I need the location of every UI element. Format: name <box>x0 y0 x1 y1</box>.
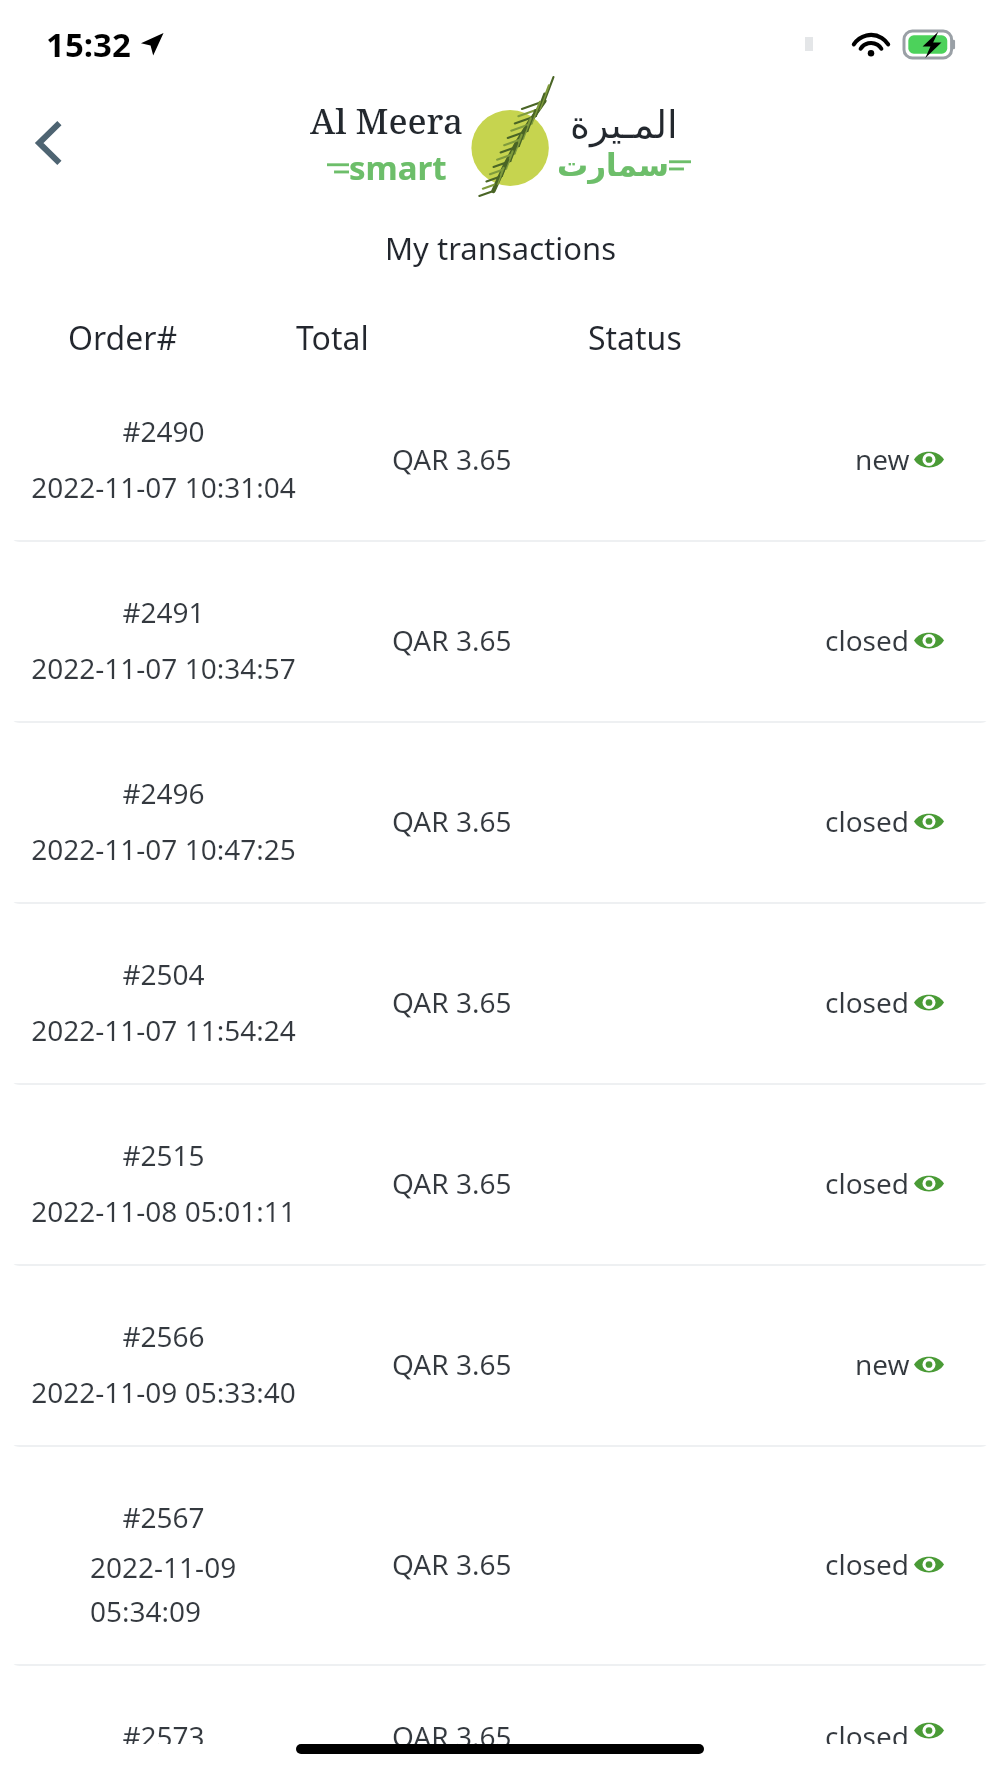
button[interactable]: #2573 <box>8 1683 992 1778</box>
staticText: سمارت <box>557 147 669 183</box>
staticText: 2022-11-07 10:47:25 <box>31 830 296 868</box>
staticText: new <box>855 440 910 478</box>
staticText: 2022-11-07 11:54:24 <box>31 1011 296 1049</box>
staticText: QAR 3.65 <box>392 983 512 1021</box>
staticText: My transactions <box>385 227 616 269</box>
button[interactable]: View order details <box>914 1173 944 1194</box>
staticText: QAR 3.65 <box>392 440 512 478</box>
staticText: #2515 <box>122 1136 205 1174</box>
staticText: 2022-11-08 05:01:11 <box>31 1192 296 1230</box>
button[interactable]: View order details <box>914 811 944 832</box>
button[interactable]: View order details <box>914 630 944 651</box>
staticText: smart <box>349 145 447 190</box>
staticText: #2504 <box>122 955 205 993</box>
staticText: #2567 <box>122 1498 205 1536</box>
button[interactable]: #2504 <box>8 921 992 1085</box>
button[interactable]: View order details <box>914 1720 944 1741</box>
button[interactable]: View order details <box>914 992 944 1013</box>
staticText: closed <box>825 1545 910 1583</box>
staticText: QAR 3.65 <box>392 802 512 840</box>
staticText: #2491 <box>122 593 205 631</box>
staticText: QAR 3.65 <box>392 1164 512 1202</box>
staticText: المـيرة <box>570 103 678 147</box>
staticText: 2022-11-09 05:34:09 <box>90 1548 237 1630</box>
staticText: closed <box>825 1164 910 1202</box>
staticText: new <box>855 1345 910 1383</box>
staticText: 2022-11-07 10:31:04 <box>31 468 296 506</box>
button[interactable]: #2491 <box>8 559 992 723</box>
staticText: #2573 <box>122 1717 205 1744</box>
staticText: closed <box>825 621 910 659</box>
button[interactable]: View order details <box>914 449 944 470</box>
button[interactable]: #2566 <box>8 1283 992 1447</box>
staticText: Al Meera <box>310 97 463 145</box>
button[interactable]: #2515 <box>8 1102 992 1266</box>
staticText: 2022-11-09 05:33:40 <box>31 1373 296 1411</box>
staticText: closed <box>825 1717 910 1744</box>
staticText: QAR 3.65 <box>392 1545 512 1583</box>
staticText: QAR 3.65 <box>392 621 512 659</box>
staticText: 2022-11-07 10:34:57 <box>31 649 296 687</box>
staticText: closed <box>825 802 910 840</box>
staticText: 15:32 <box>46 22 131 67</box>
staticText: #2496 <box>122 774 205 812</box>
button[interactable]: #2490 <box>8 378 992 542</box>
button[interactable]: #2567 <box>8 1464 992 1666</box>
button[interactable]: #2496 <box>8 740 992 904</box>
staticText: QAR 3.65 <box>392 1345 512 1383</box>
staticText: Status <box>588 316 682 360</box>
button[interactable]: Back <box>14 108 84 178</box>
button[interactable]: View order details <box>914 1354 944 1375</box>
staticText: closed <box>825 983 910 1021</box>
staticText: QAR 3.65 <box>392 1717 512 1744</box>
button[interactable]: View order details <box>914 1554 944 1575</box>
staticText: Order# <box>68 316 178 360</box>
staticText: #2490 <box>122 412 205 450</box>
staticText: Total <box>296 316 369 360</box>
staticText: #2566 <box>122 1317 205 1355</box>
